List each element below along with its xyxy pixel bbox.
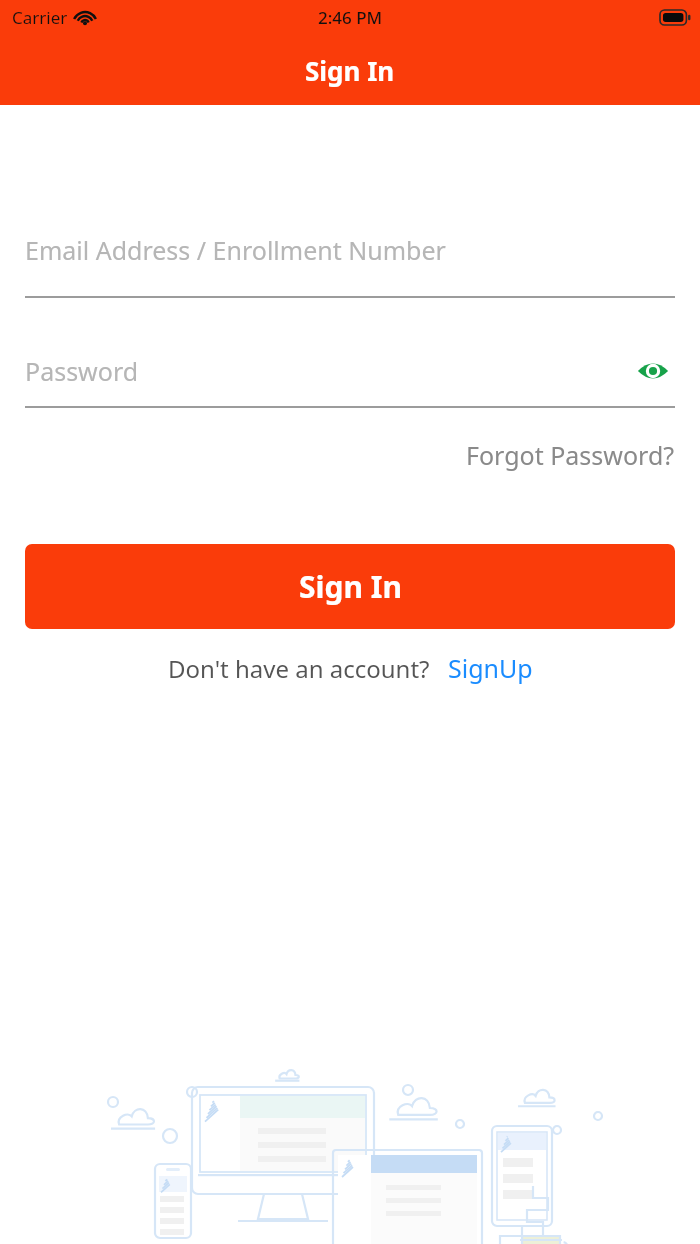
staticText: Forgot Password? bbox=[466, 438, 675, 472]
staticText: Carrier bbox=[12, 6, 68, 29]
staticText: Don't have an account? bbox=[168, 652, 430, 685]
button[interactable]: Sign In bbox=[25, 544, 675, 629]
button[interactable]: Password bbox=[25, 354, 675, 388]
staticText: Password bbox=[25, 354, 631, 388]
button[interactable]: Email Address / Enrollment Number bbox=[25, 233, 675, 298]
staticText: Sign In bbox=[305, 53, 395, 88]
staticText: SignUp bbox=[448, 651, 533, 685]
staticText: 2:46 PM bbox=[318, 6, 383, 29]
staticText: Email Address / Enrollment Number bbox=[25, 233, 446, 267]
button[interactable]: Forgot Password? bbox=[462, 434, 679, 476]
button[interactable]: Show password bbox=[631, 354, 675, 388]
staticText: Sign In bbox=[299, 566, 402, 607]
button[interactable]: SignUp bbox=[448, 651, 533, 685]
